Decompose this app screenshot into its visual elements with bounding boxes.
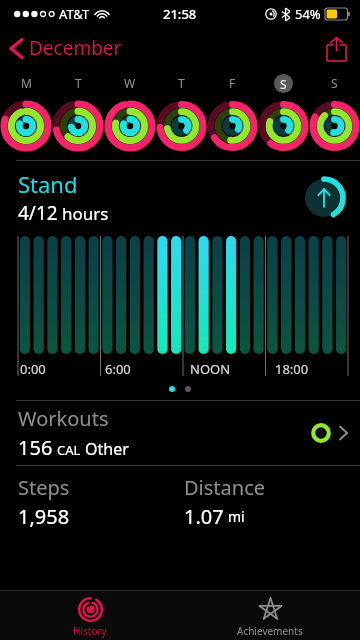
button[interactable]: Share (313, 32, 360, 65)
staticText: T (178, 75, 185, 91)
button[interactable]: Distance (180, 466, 360, 528)
staticText: 1.07 (184, 503, 224, 528)
staticText: mi (228, 507, 245, 526)
button[interactable] (156, 96, 207, 156)
staticText: Other (85, 438, 129, 460)
staticText: 6:00 (105, 360, 131, 378)
staticText: Stand (18, 169, 78, 199)
button[interactable] (52, 96, 104, 156)
staticText: History (73, 624, 107, 638)
staticText: Steps (18, 474, 70, 501)
staticText: NOON (190, 360, 231, 378)
button[interactable]: Share Stand (302, 176, 346, 220)
button[interactable] (258, 96, 309, 156)
button[interactable] (0, 96, 52, 156)
staticText: CAL (57, 441, 81, 459)
staticText: 4/12 (18, 200, 58, 226)
staticText: 54% (295, 5, 321, 23)
staticText: 18:00 (275, 360, 309, 378)
staticText: F (229, 75, 236, 91)
staticText: Workouts (18, 405, 109, 432)
button[interactable]: Workouts (0, 401, 360, 465)
staticText: hours (62, 202, 109, 225)
staticText: 1,958 (18, 503, 70, 528)
staticText: AT&T (59, 5, 90, 23)
button[interactable]: Achievements (180, 591, 360, 640)
button[interactable] (104, 96, 156, 156)
staticText: M (21, 75, 32, 91)
button[interactable]: December (0, 31, 130, 65)
staticText: Achievements (237, 624, 303, 638)
button[interactable] (309, 96, 360, 156)
staticText: W (124, 75, 136, 91)
button[interactable]: History (0, 591, 180, 640)
staticText: Distance (184, 474, 266, 501)
staticText: 0:00 (20, 360, 46, 378)
staticText: December (29, 35, 122, 61)
staticText: S (331, 75, 338, 91)
button[interactable]: Steps (0, 466, 180, 528)
staticText: 156 (18, 434, 53, 461)
button[interactable] (207, 96, 258, 156)
staticText: T (75, 75, 82, 91)
staticText: S (280, 76, 287, 92)
staticText: 21:58 (163, 5, 197, 23)
